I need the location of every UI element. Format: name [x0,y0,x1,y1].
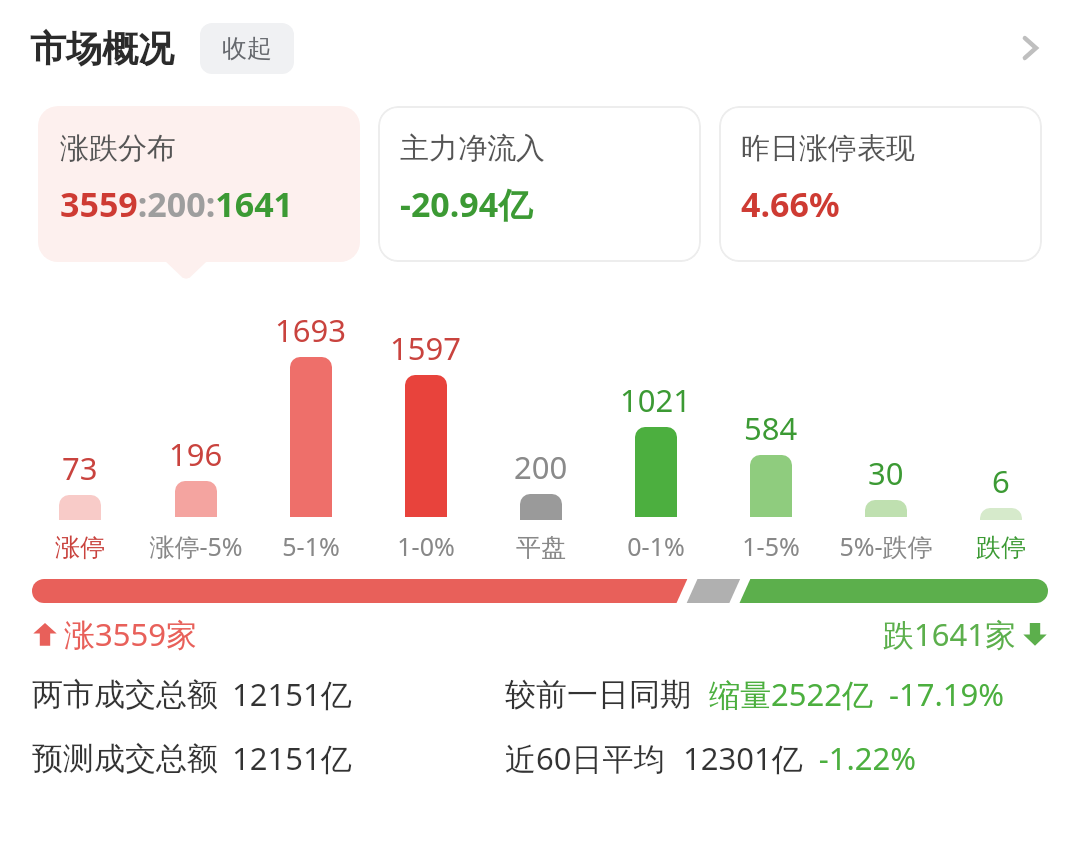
staticText: 较前一日同期 [505,675,691,714]
staticText: 73 [62,447,98,489]
staticText: 4.66% [741,181,840,227]
staticText: 12301亿 -1.22% [683,737,917,779]
staticText: 5%-跌停 [839,529,933,563]
staticText: 1-5% [742,529,800,563]
staticText: 1693 [275,309,346,351]
button[interactable]: 昨日涨停表现 [719,106,1042,262]
staticText: 12151亿 [232,737,352,779]
staticText: 12151亿 [232,673,352,715]
staticText: 30 [868,452,904,494]
staticText: 涨跌分布 [60,130,176,167]
staticText: 收起 [222,33,272,64]
staticText: 584 [744,407,798,449]
staticText: 3559:200:1641 [60,181,294,227]
staticText: 缩量2522亿 -17.19% [709,673,1005,715]
staticText: 市场概况 [30,26,174,71]
staticText: 6 [992,460,1010,502]
staticText: 涨停-5% [149,529,243,563]
staticText: 1597 [390,327,461,369]
staticText: 跌1641家 [883,613,1016,655]
staticText: 跌停 [976,532,1026,563]
staticText: 1021 [620,379,691,421]
staticText: 预测成交总额 [32,739,218,778]
staticText: 0-1% [627,529,685,563]
button[interactable]: More [1002,20,1058,76]
button[interactable]: 涨跌分布 [38,106,360,262]
staticText: 5-1% [282,529,340,563]
staticText: 涨停 [55,532,105,563]
staticText: 1-0% [397,529,455,563]
button[interactable]: 收起 [200,23,294,74]
staticText: 平盘 [516,532,566,563]
staticText: -20.94亿 [400,181,533,227]
staticText: 两市成交总额 [32,675,218,714]
staticText: 昨日涨停表现 [741,130,915,167]
staticText: 近60日平均 [505,737,665,779]
staticText: 196 [169,433,223,475]
staticText: 主力净流入 [400,130,545,167]
staticText: 200 [514,446,568,488]
button[interactable]: 主力净流入 [378,106,701,262]
staticText: 涨3559家 [64,613,197,655]
